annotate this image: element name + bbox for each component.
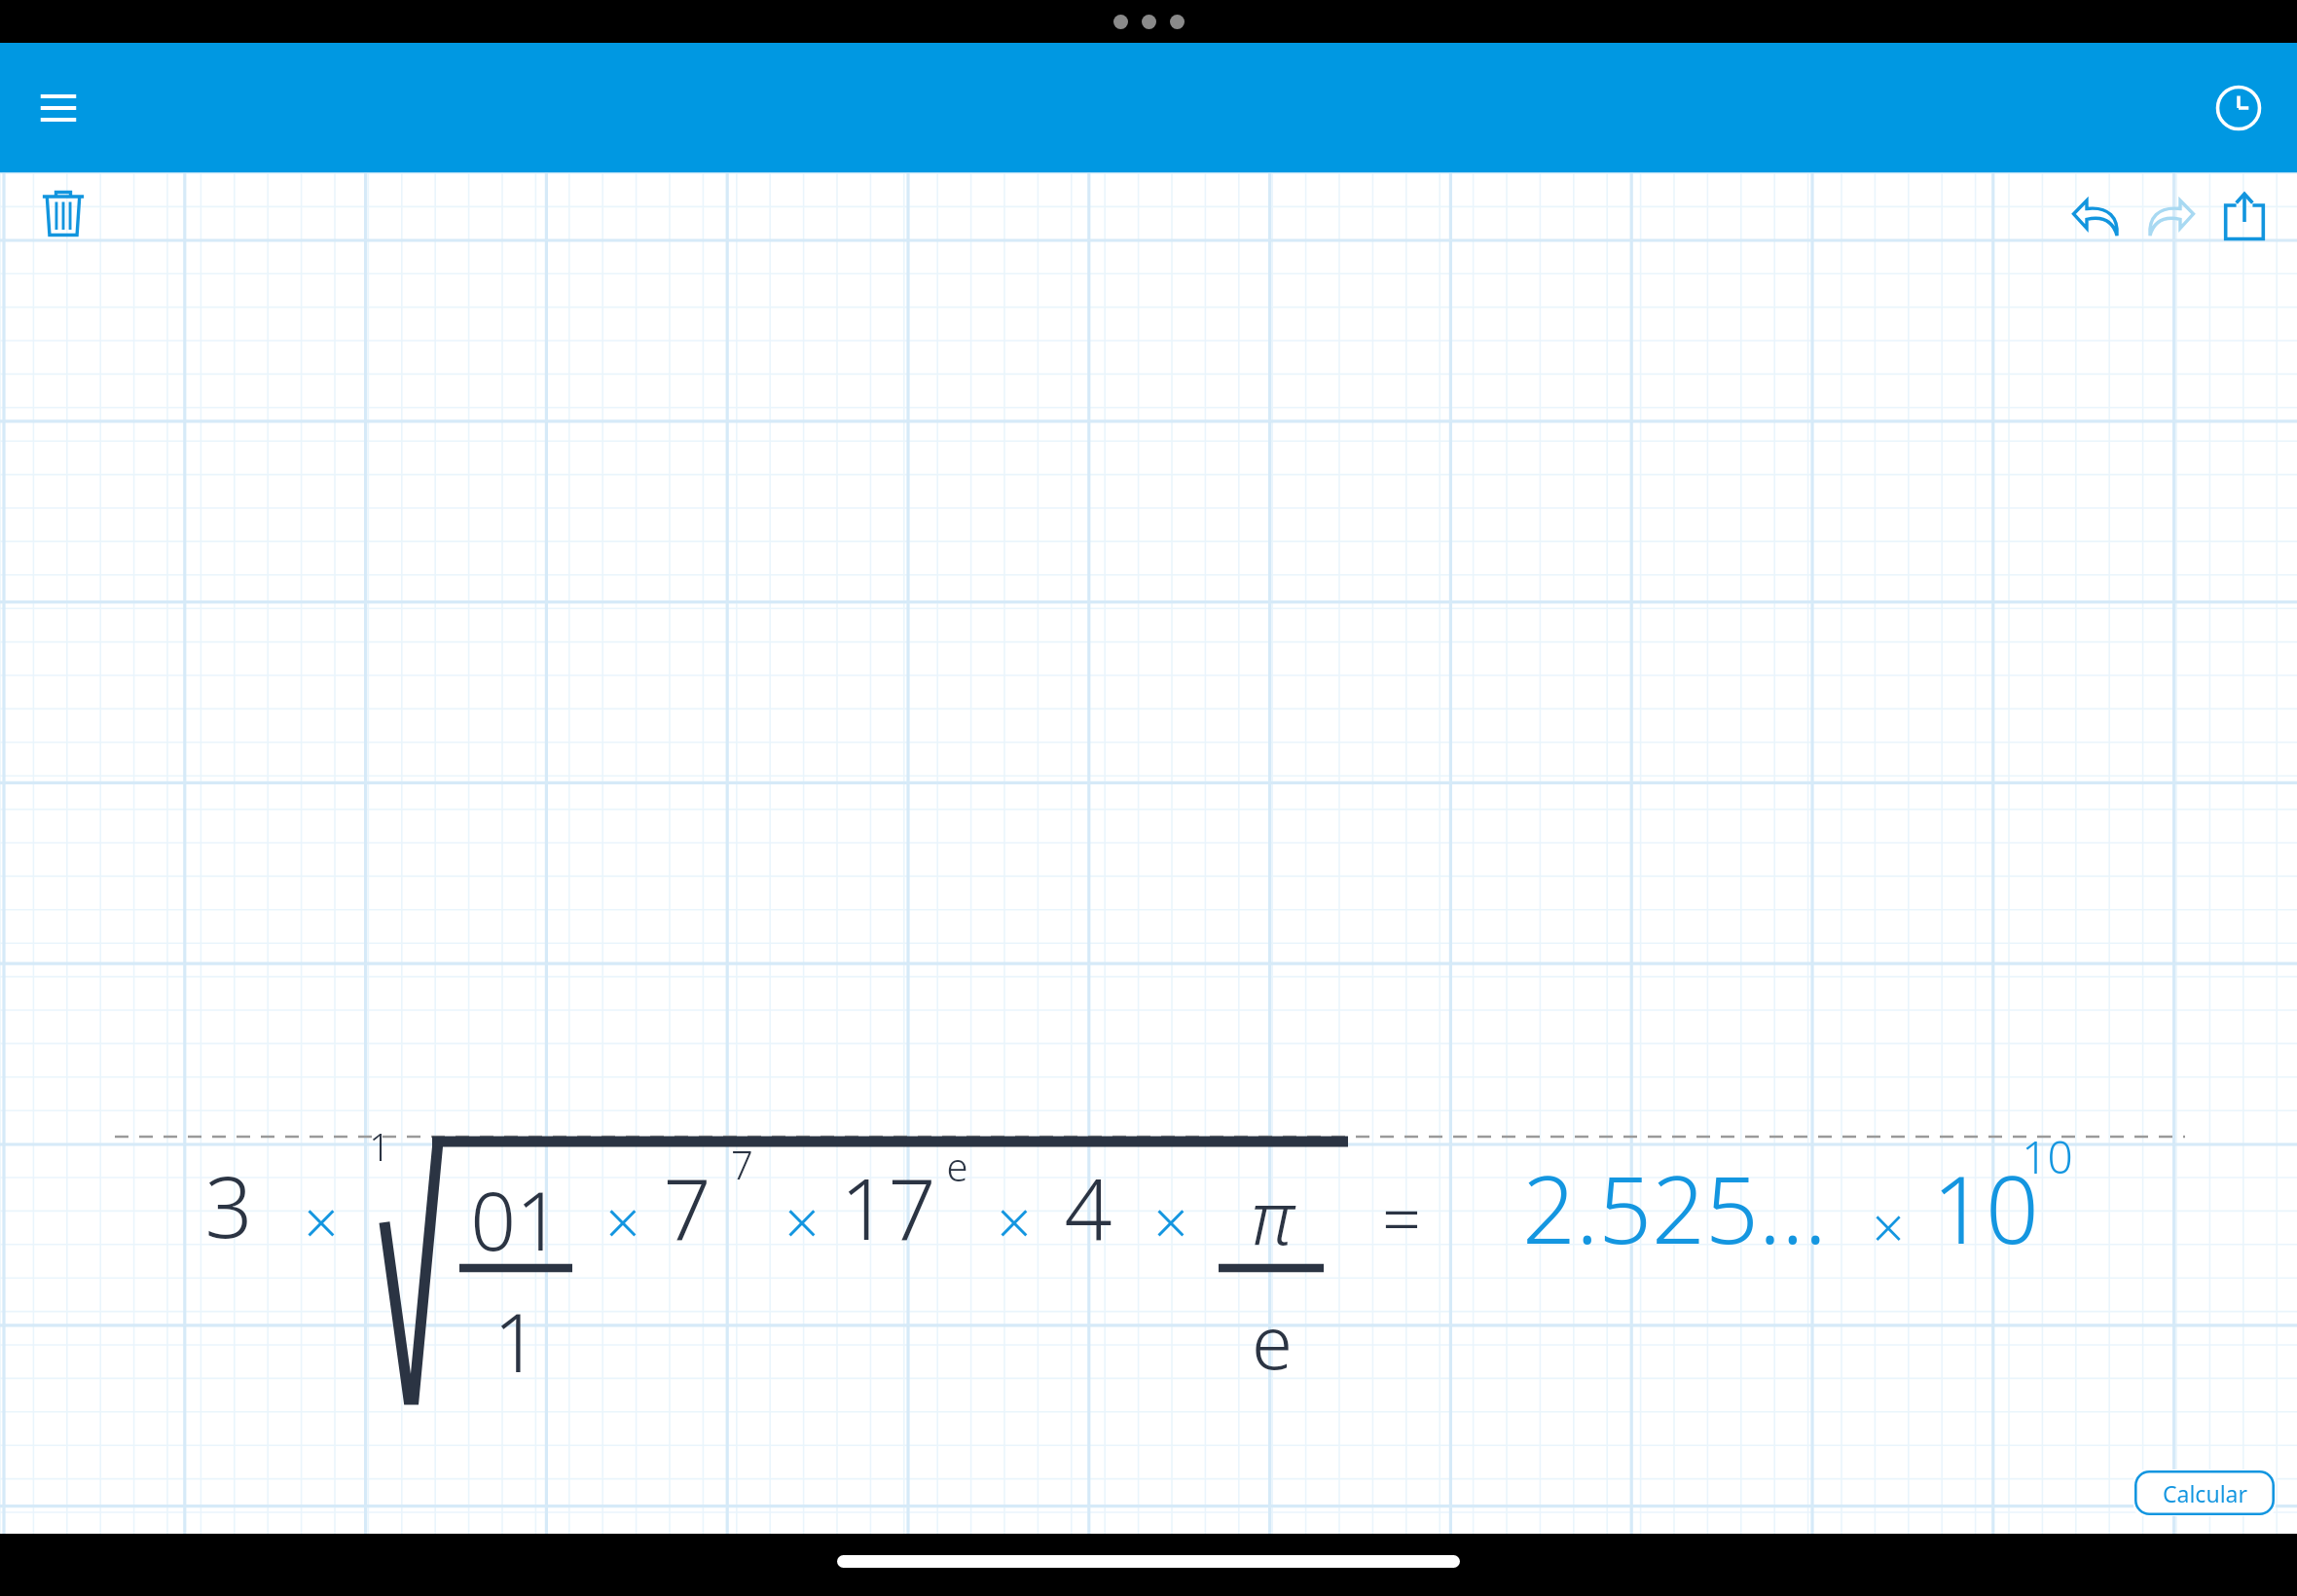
staticText: 7 [663, 1150, 711, 1264]
button[interactable]: Share [2207, 179, 2281, 253]
button[interactable]: Menu [19, 69, 97, 147]
staticText: 3 [204, 1148, 253, 1262]
staticText: 10 [1932, 1143, 2039, 1271]
staticText: × [605, 1180, 640, 1262]
staticText: × [1872, 1188, 1905, 1265]
staticText: e [1252, 1290, 1293, 1392]
staticText: 1 [369, 1121, 390, 1172]
button[interactable]: History [2200, 69, 2278, 147]
button[interactable]: Redo [2133, 179, 2207, 253]
staticText: 7 [731, 1138, 753, 1190]
staticText: π [1251, 1166, 1294, 1267]
button[interactable]: Delete [29, 179, 97, 247]
button[interactable]: Undo [2060, 179, 2133, 253]
staticText: × [997, 1180, 1032, 1262]
staticText: × [304, 1180, 339, 1262]
staticText: 2.525… [1522, 1143, 1827, 1271]
staticText: = [1382, 1171, 1421, 1263]
button[interactable]: Calcular [2133, 1469, 2276, 1516]
staticText: 10 [2022, 1126, 2073, 1187]
staticText: e [946, 1140, 968, 1192]
staticText: 1 [493, 1287, 539, 1396]
staticText: 17 [840, 1150, 936, 1264]
staticText: × [1153, 1180, 1188, 1262]
staticText: 01 [470, 1165, 562, 1274]
staticText: × [784, 1180, 820, 1262]
staticText: 4 [1064, 1150, 1112, 1264]
staticText: Calcular [2163, 1478, 2247, 1508]
